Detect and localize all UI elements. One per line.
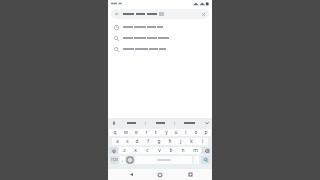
staticText: t (155, 129, 157, 136)
button[interactable]: h (164, 138, 175, 145)
button[interactable]: e (131, 129, 141, 136)
button[interactable] (108, 32, 212, 43)
button[interactable]: i (181, 129, 191, 136)
staticText: h (168, 138, 172, 145)
staticText: y (165, 129, 168, 136)
staticText: ?123 (111, 158, 118, 162)
button[interactable]: Key (202, 147, 211, 154)
staticText: m (193, 147, 198, 154)
button[interactable]: g (153, 138, 164, 145)
button[interactable]: Period (194, 156, 199, 164)
button[interactable]: j (175, 138, 186, 145)
staticText: x (134, 147, 137, 154)
button[interactable]: Comma (120, 156, 125, 164)
button[interactable]: ?123 (110, 156, 118, 164)
staticText: b (169, 147, 173, 154)
button[interactable]: Expand suggestions (203, 119, 210, 126)
button[interactable]: r (141, 129, 151, 136)
staticText: e (135, 129, 138, 136)
button[interactable]: Search (201, 156, 210, 164)
button[interactable] (146, 118, 174, 127)
button[interactable]: m (189, 147, 201, 154)
button[interactable]: Back (114, 11, 120, 17)
button[interactable]: Space (135, 156, 192, 164)
button[interactable]: Key (109, 147, 118, 154)
button[interactable] (175, 118, 203, 127)
button[interactable]: f (142, 138, 153, 145)
staticText: k (190, 138, 193, 145)
staticText: r (145, 129, 148, 136)
button[interactable]: z (119, 147, 130, 154)
staticText: , (122, 157, 124, 163)
button[interactable]: a (112, 138, 122, 145)
staticText: j (180, 138, 182, 145)
staticText: g (157, 138, 161, 145)
button[interactable] (117, 118, 145, 127)
staticText: c (146, 147, 149, 154)
staticText: p (204, 129, 208, 136)
button[interactable]: y (161, 129, 171, 136)
button[interactable]: v (153, 147, 165, 154)
staticText: o (194, 129, 198, 136)
staticText: . (196, 157, 198, 163)
button[interactable]: c (141, 147, 153, 154)
button[interactable]: k (186, 138, 197, 145)
button[interactable] (108, 43, 212, 54)
button[interactable]: Back (124, 169, 138, 180)
button[interactable]: p (201, 129, 211, 136)
button[interactable]: w (120, 129, 131, 136)
staticText: a (116, 138, 119, 145)
button[interactable]: x (130, 147, 141, 154)
button[interactable]: q (109, 129, 120, 136)
button[interactable]: l (197, 138, 208, 145)
staticText: v (158, 147, 161, 154)
staticText: z (123, 147, 126, 154)
button[interactable]: Back (111, 9, 209, 19)
button[interactable]: t (151, 129, 161, 136)
staticText: q (113, 129, 117, 136)
button[interactable]: Recent apps (183, 169, 197, 180)
staticText: d (135, 138, 139, 145)
staticText: f (147, 138, 149, 145)
button[interactable]: Home (153, 169, 167, 180)
button[interactable]: s (122, 138, 132, 145)
staticText: s (126, 138, 129, 145)
staticText: n (181, 147, 185, 154)
button[interactable]: Clear query (200, 11, 206, 17)
button[interactable]: n (177, 147, 189, 154)
button[interactable]: o (191, 129, 201, 136)
staticText: u (174, 129, 178, 136)
button[interactable]: Emoji (126, 156, 134, 164)
staticText: w (124, 129, 128, 136)
staticText: l (202, 138, 204, 145)
staticText: i (185, 129, 187, 136)
button[interactable]: u (171, 129, 181, 136)
button[interactable]: b (165, 147, 177, 154)
button[interactable]: d (132, 138, 142, 145)
button[interactable]: Voice input (110, 119, 117, 126)
button[interactable] (108, 21, 212, 32)
